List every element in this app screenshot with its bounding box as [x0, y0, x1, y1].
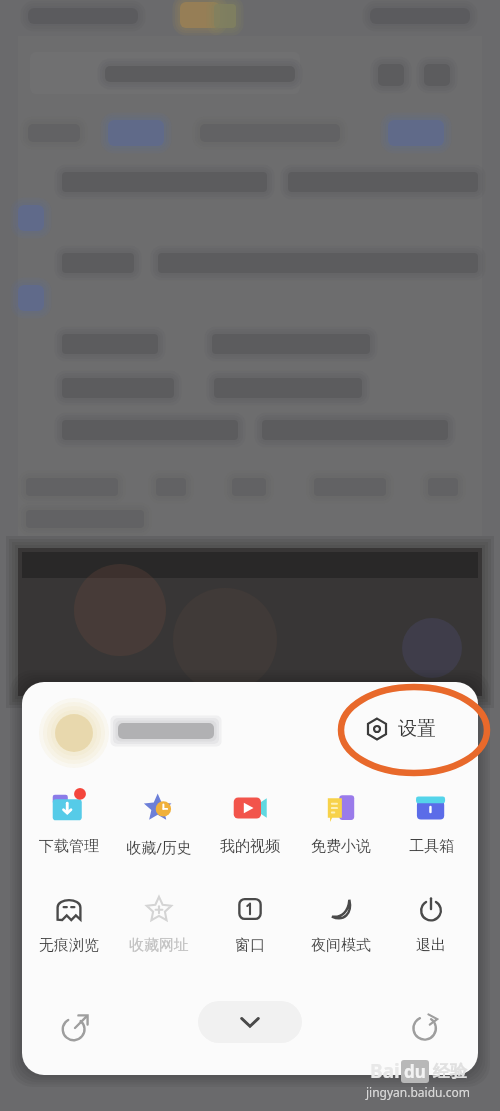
staticText: 免费小说	[311, 837, 371, 856]
button[interactable]: 夜间模式	[297, 888, 385, 955]
staticText: 窗口	[235, 936, 265, 955]
staticText: 收藏网址	[129, 936, 189, 955]
staticText: Bai	[370, 1058, 400, 1084]
staticText: 无痕浏览	[39, 936, 99, 955]
staticText: 收藏/历史	[126, 837, 192, 857]
staticText: 下载管理	[39, 837, 99, 856]
staticText: 设置	[398, 717, 436, 741]
button[interactable]: 工具箱	[387, 782, 475, 856]
staticText: jingyan.baidu.com	[366, 1084, 470, 1100]
button[interactable]: 收藏/历史	[115, 782, 203, 857]
button[interactable]: 免费小说	[297, 782, 385, 856]
staticText: 工具箱	[409, 837, 454, 856]
staticText: 退出	[416, 936, 446, 955]
button[interactable]: 窗口	[206, 888, 294, 955]
button[interactable]: 我的视频	[206, 782, 294, 856]
button[interactable]: 无痕浏览	[25, 888, 113, 955]
button[interactable]: Share	[48, 1001, 102, 1055]
button[interactable]: 下载管理	[25, 782, 113, 856]
staticText: du	[404, 1060, 426, 1083]
button[interactable]: Refresh	[398, 1001, 452, 1055]
button[interactable]: 收藏网址	[115, 888, 203, 955]
button[interactable]: Collapse panel	[198, 1001, 302, 1043]
staticText: 经验	[433, 1061, 467, 1082]
staticText: 夜间模式	[311, 936, 371, 955]
button[interactable]: 退出	[387, 888, 475, 955]
button[interactable]: 设置	[358, 708, 442, 750]
staticText: 我的视频	[220, 837, 280, 856]
